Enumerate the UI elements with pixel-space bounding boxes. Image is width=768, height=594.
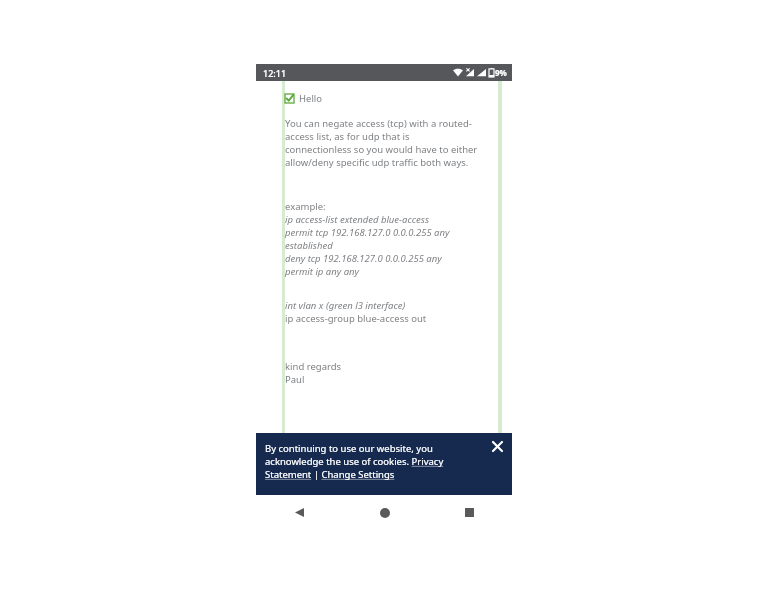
- staticText: access list, as for udp that is: [285, 130, 410, 143]
- staticText: kind regards: [285, 360, 342, 373]
- staticText: int vlan x (green l3 interface): [285, 299, 406, 312]
- button[interactable]: acknowledge the use of cookies. Privacy: [265, 455, 444, 468]
- staticText: example:: [285, 200, 326, 213]
- button[interactable]: Home: [342, 495, 427, 530]
- staticText: established: [285, 239, 333, 252]
- staticText: Hello: [299, 92, 323, 105]
- staticText: connectionless so you would have to eith…: [285, 143, 478, 156]
- staticText: permit tcp 192.168.127.0 0.0.0.255 any: [285, 226, 450, 239]
- staticText: ip access-list extended blue-access: [285, 213, 430, 226]
- staticText: 9%: [495, 67, 507, 78]
- staticText: ip access-group blue-access out: [285, 312, 427, 325]
- button[interactable]: By continuing to use our website, you: [265, 442, 433, 455]
- button[interactable]: Recent apps: [427, 495, 512, 530]
- staticText: allow/deny specific udp traffic both way…: [285, 156, 469, 169]
- button[interactable]: Statement | Change Settings: [265, 468, 395, 481]
- staticText: Paul: [285, 373, 305, 386]
- staticText: permit ip any any: [285, 265, 359, 278]
- staticText: 12:11: [263, 67, 287, 79]
- staticText: deny tcp 192.168.127.0 0.0.0.255 any: [285, 252, 442, 265]
- staticText: You can negate access (tcp) with a route…: [285, 117, 472, 130]
- button[interactable]: Close cookie banner: [487, 436, 507, 456]
- button[interactable]: Back: [256, 495, 342, 530]
